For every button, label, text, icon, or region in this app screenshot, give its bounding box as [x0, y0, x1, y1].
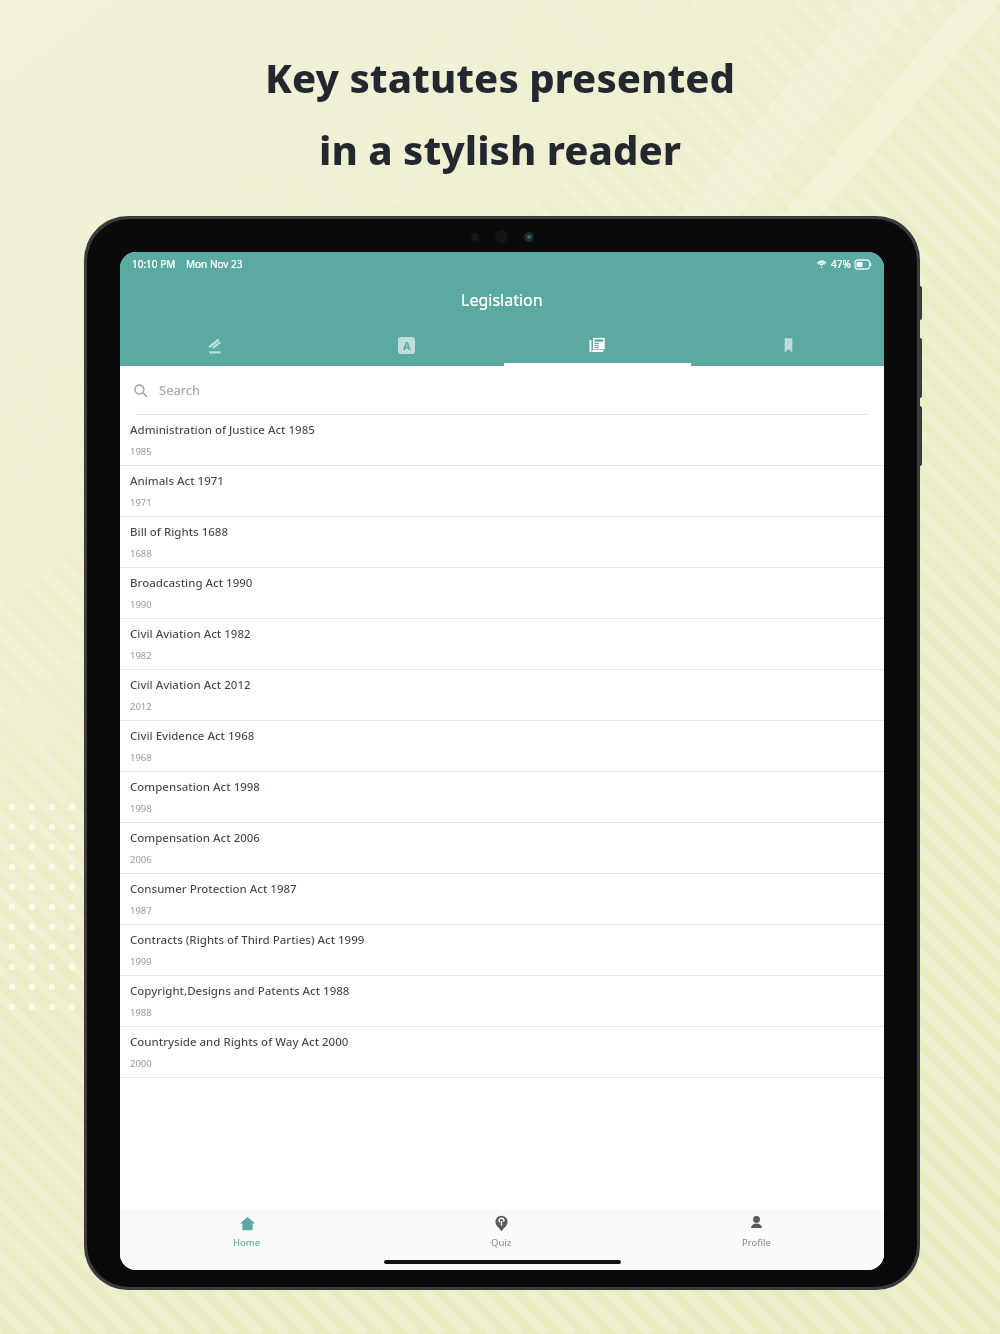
button[interactable]: Administration of Justice Act 1985 [120, 415, 884, 465]
staticText: Civil Evidence Act 1968 [130, 728, 255, 744]
staticText: Profile [742, 1236, 771, 1249]
button[interactable]: Bookmarks [693, 324, 884, 366]
button[interactable]: Cases [120, 324, 311, 366]
staticText: Civil Aviation Act 2012 [130, 677, 251, 693]
staticText: 1982 [130, 649, 152, 662]
button[interactable]: Bill of Rights 1688 [120, 517, 884, 567]
button[interactable]: Broadcasting Act 1990 [120, 568, 884, 618]
button[interactable]: Compensation Act 1998 [120, 772, 884, 822]
button[interactable]: Civil Evidence Act 1968 [120, 721, 884, 771]
button[interactable]: Animals Act 1971 [120, 466, 884, 516]
staticText: Broadcasting Act 1990 [130, 575, 253, 591]
staticText: 1998 [130, 802, 152, 815]
staticText: Home [233, 1236, 261, 1249]
staticText: 1988 [130, 1006, 152, 1019]
staticText: Quiz [491, 1236, 512, 1249]
staticText: 10:10 PM [132, 257, 176, 271]
staticText: 1971 [130, 496, 152, 509]
staticText: Administration of Justice Act 1985 [130, 422, 315, 438]
staticText: Key statutes presented [265, 50, 735, 104]
staticText: 2006 [130, 853, 152, 866]
staticText: in a stylish reader [319, 122, 681, 176]
staticText: Countryside and Rights of Way Act 2000 [130, 1034, 349, 1050]
button[interactable]: Countryside and Rights of Way Act 2000 [120, 1027, 884, 1077]
staticText: A [403, 338, 411, 353]
button[interactable]: Consumer Protection Act 1987 [120, 874, 884, 924]
staticText: Legislation [461, 289, 543, 311]
staticText: Mon Nov 23 [186, 257, 243, 271]
staticText: Search [159, 381, 201, 399]
staticText: Bill of Rights 1688 [130, 524, 228, 540]
staticText: Contracts (Rights of Third Parties) Act … [130, 932, 365, 948]
staticText: Copyright,Designs and Patents Act 1988 [130, 983, 350, 999]
button[interactable]: Home [120, 1210, 374, 1254]
staticText: 1987 [130, 904, 152, 917]
staticText: Animals Act 1971 [130, 473, 224, 489]
button[interactable]: Definitions [311, 324, 502, 366]
staticText: 1999 [130, 955, 152, 968]
staticText: 47% [831, 257, 851, 271]
button[interactable]: Civil Aviation Act 1982 [120, 619, 884, 669]
staticText: Compensation Act 2006 [130, 830, 260, 846]
button[interactable]: Legislation [502, 324, 693, 366]
staticText: 1688 [130, 547, 152, 560]
staticText: Compensation Act 1998 [130, 779, 260, 795]
button[interactable]: Copyright,Designs and Patents Act 1988 [120, 976, 884, 1026]
staticText: 2012 [130, 700, 152, 713]
button[interactable]: Quiz [374, 1210, 629, 1254]
staticText: Civil Aviation Act 1982 [130, 626, 251, 642]
staticText: 1968 [130, 751, 152, 764]
staticText: Consumer Protection Act 1987 [130, 881, 297, 897]
button[interactable]: Civil Aviation Act 2012 [120, 670, 884, 720]
button[interactable]: Compensation Act 2006 [120, 823, 884, 873]
staticText: 1985 [130, 445, 152, 458]
staticText: 2000 [130, 1057, 152, 1070]
button[interactable]: Profile [629, 1210, 884, 1254]
button[interactable]: Contracts (Rights of Third Parties) Act … [120, 925, 884, 975]
staticText: 1990 [130, 598, 152, 611]
